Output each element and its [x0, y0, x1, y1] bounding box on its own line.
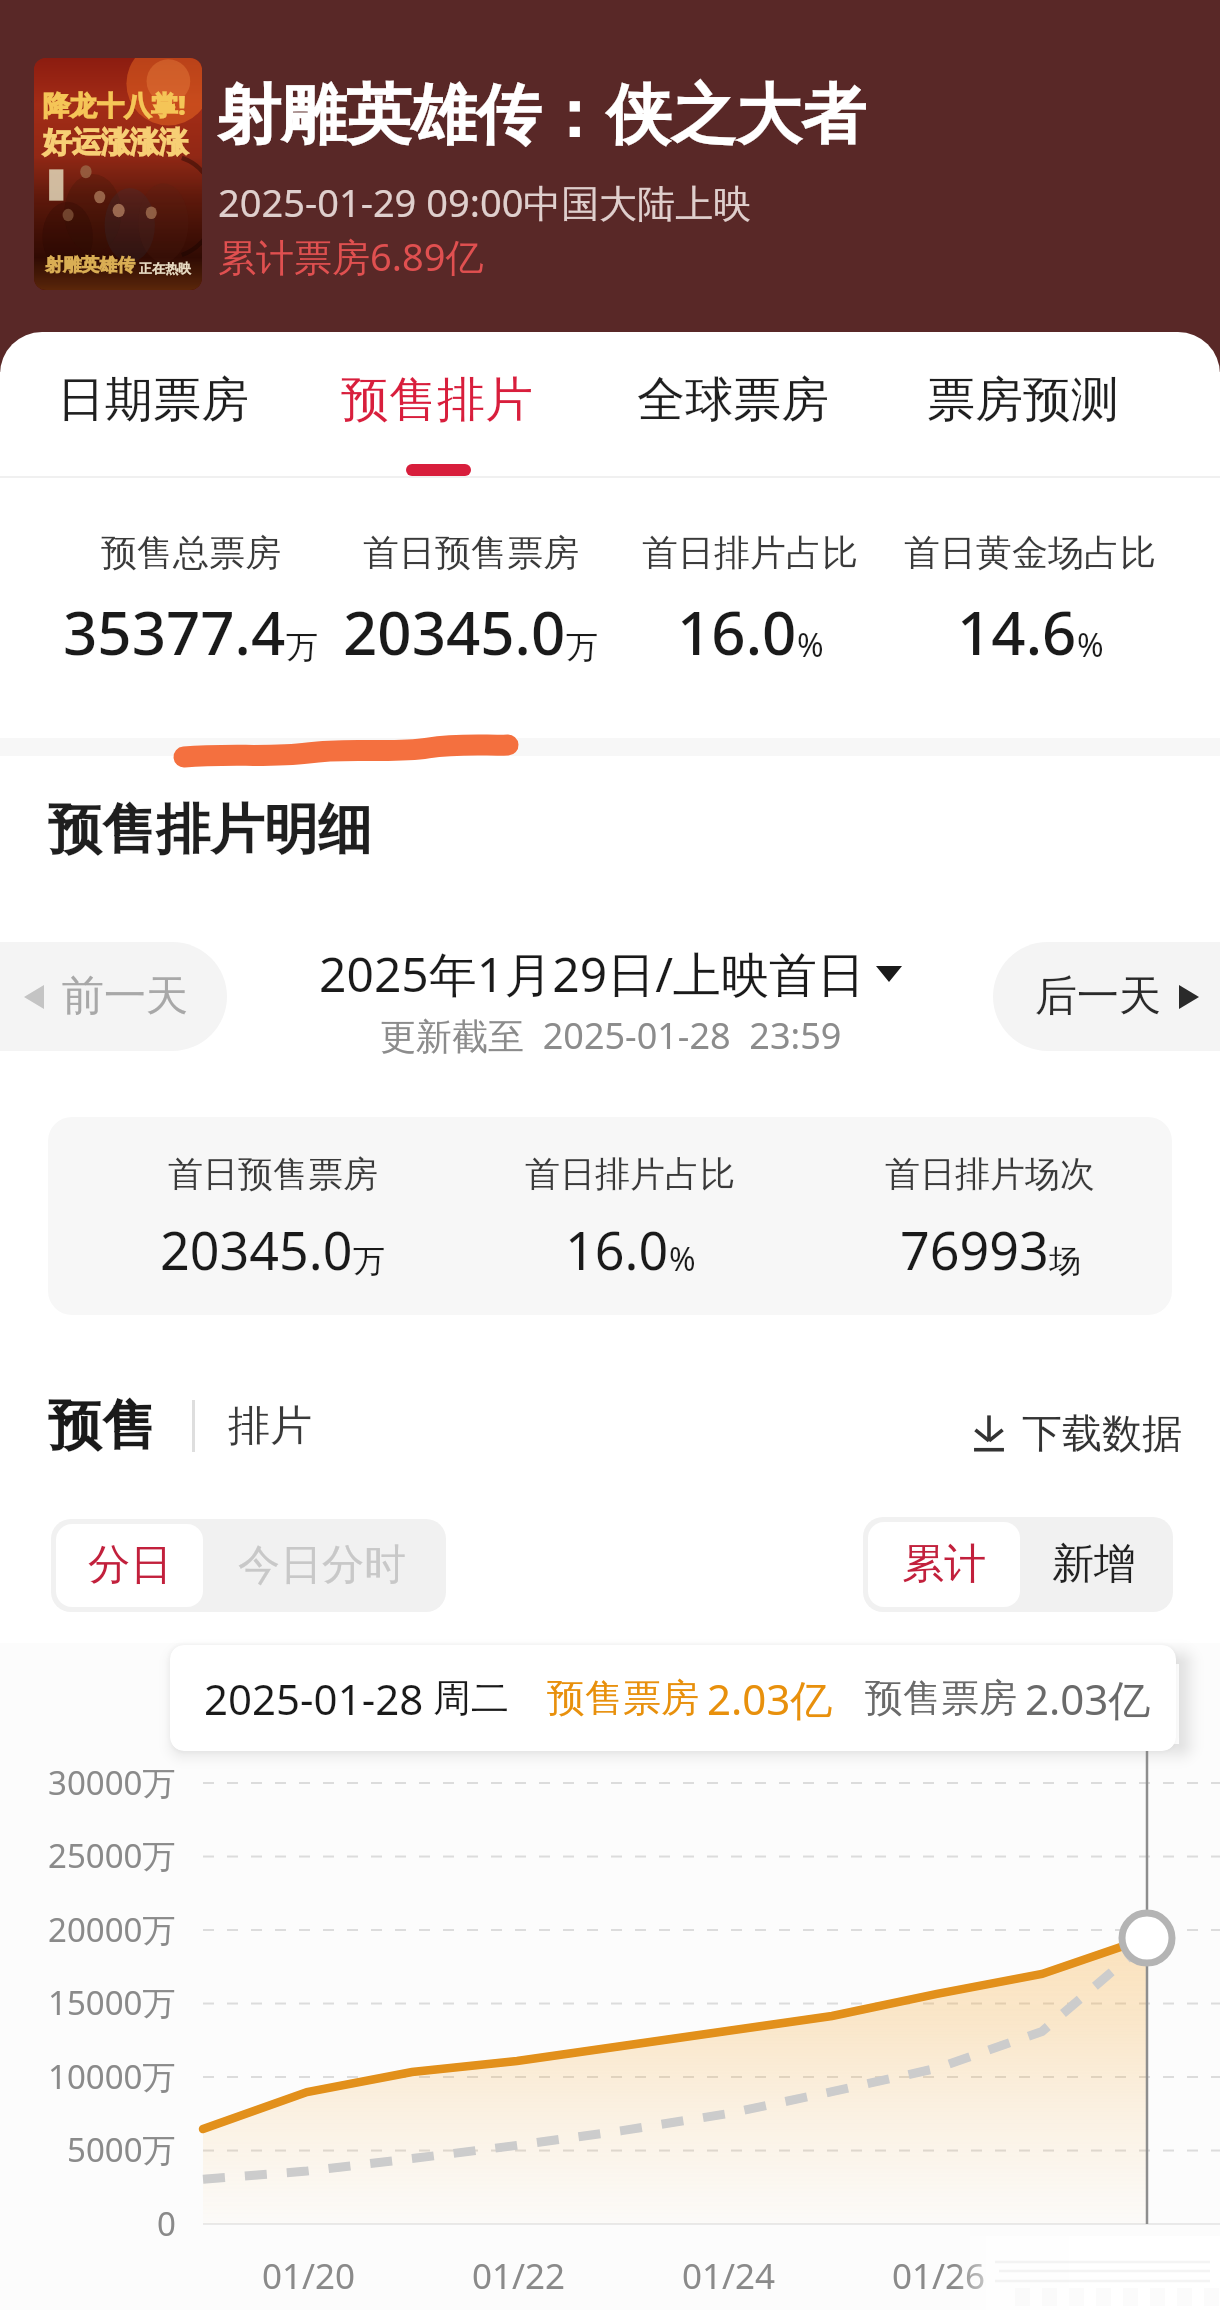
button[interactable]: 前一天 — [0, 942, 227, 1051]
button[interactable]: 排片 — [228, 1386, 312, 1466]
staticText: 20345.0 — [343, 591, 566, 673]
staticText: 首日预售票房 — [168, 1152, 378, 1196]
staticText: 后一天 — [1035, 970, 1161, 1023]
button[interactable]: 新增 — [1020, 1522, 1168, 1607]
staticText: 下载数据 — [1022, 1408, 1182, 1458]
staticText: 周二 — [433, 1674, 509, 1722]
staticText: 2025-01-28 — [204, 1670, 424, 1727]
staticText: 76993 — [900, 1214, 1049, 1285]
button[interactable]: 日期票房 — [23, 344, 283, 456]
staticText: 预售票房 — [865, 1674, 1017, 1722]
staticText: % — [1077, 623, 1104, 667]
staticText: 预售总票房 — [101, 530, 281, 575]
staticText: 降龙十八掌! — [43, 86, 186, 123]
staticText: 累计票房6.89亿 — [218, 230, 484, 282]
staticText: 首日排片占比 — [642, 530, 858, 575]
staticText: 日期票房 — [57, 370, 249, 430]
staticText: 分日 — [88, 1539, 172, 1592]
staticText: 01/20 — [262, 2252, 356, 2300]
button[interactable]: 分日 — [56, 1524, 203, 1607]
button[interactable]: 预售 — [48, 1386, 156, 1466]
staticText: 射雕英雄传 — [45, 254, 135, 277]
staticText: 新增 — [1052, 1538, 1136, 1591]
button[interactable]: 下载数据 — [972, 1408, 1182, 1458]
staticText: 35377.4 — [63, 591, 286, 673]
button[interactable]: 票房预测 — [893, 344, 1153, 456]
staticText: 好运涨涨涨 — [43, 124, 188, 161]
staticText: 0 — [157, 2201, 176, 2246]
staticText: 2.03亿 — [1025, 1670, 1151, 1727]
staticText: 预售排片明细 — [48, 796, 372, 864]
staticText: 万 — [353, 1241, 385, 1281]
staticText: 30000万 — [48, 1760, 176, 1805]
staticText: 前一天 — [62, 970, 188, 1023]
staticText: 首日预售票房 — [363, 530, 579, 575]
staticText: 2025年1月29日/上映首日 — [319, 941, 866, 1007]
staticText: 今日分时 — [238, 1539, 406, 1592]
staticText: 射雕英雄传：侠之大者 — [216, 74, 866, 156]
button[interactable]: 后一天 — [993, 942, 1220, 1051]
staticText: 10000万 — [48, 2054, 176, 2099]
staticText: % — [669, 1237, 696, 1281]
staticText: 01/22 — [472, 2252, 566, 2300]
staticText: 16.0 — [565, 1214, 669, 1285]
staticText: 5000万 — [67, 2127, 176, 2172]
staticText: 2025-01-29 09:00中国大陆上映 — [218, 176, 752, 228]
staticText: 万 — [286, 627, 318, 667]
staticText: 15000万 — [48, 1980, 176, 2025]
staticText: 正在热映 — [139, 260, 191, 276]
staticText: 全球票房 — [637, 370, 829, 430]
button[interactable]: 全球票房 — [603, 344, 863, 456]
staticText: 14.6 — [957, 591, 1077, 673]
button[interactable]: 累计 — [868, 1522, 1020, 1607]
staticText: 首日排片场次 — [885, 1152, 1095, 1196]
staticText: 01/26 — [892, 2252, 986, 2300]
staticText: 20345.0 — [160, 1214, 353, 1285]
staticText: % — [797, 623, 824, 667]
staticText: 25000万 — [48, 1833, 176, 1878]
staticText: 首日黄金场占比 — [904, 530, 1156, 575]
button[interactable]: 预售排片 — [307, 344, 567, 456]
button[interactable]: 2025年1月29日/上映首日 — [319, 941, 902, 1007]
button[interactable]: 今日分时 — [203, 1524, 441, 1607]
staticText: 排片 — [228, 1400, 312, 1453]
staticText: 首日排片占比 — [525, 1152, 735, 1196]
staticText: 万 — [566, 627, 598, 667]
staticText: 累计 — [902, 1538, 986, 1591]
staticText: 16.0 — [677, 591, 797, 673]
staticText: 01/24 — [682, 2252, 776, 2300]
staticText: 票房预测 — [927, 370, 1119, 430]
staticText: 预售票房 — [547, 1674, 699, 1722]
staticText: 预售 — [48, 1392, 156, 1460]
staticText: 预售排片 — [341, 370, 533, 430]
staticText: 20000万 — [48, 1907, 176, 1952]
staticText: 更新截至 2025-01-28 23:59 — [380, 1011, 842, 1060]
staticText: 场 — [1049, 1241, 1081, 1281]
staticText: 2.03亿 — [707, 1670, 833, 1727]
